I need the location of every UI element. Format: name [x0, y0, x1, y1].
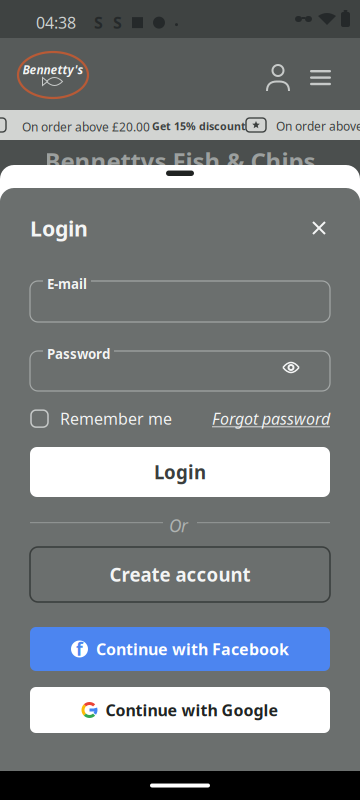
staticText: Forgot password [212, 408, 330, 429]
staticText: S [113, 12, 122, 33]
staticText: Create account [109, 562, 250, 587]
button[interactable]: Login [30, 447, 330, 497]
button[interactable]: Account [267, 65, 289, 91]
button[interactable]: Forgot password [212, 408, 330, 429]
button[interactable]: Remember me [31, 408, 172, 429]
staticText: Remember me [60, 408, 172, 429]
staticText: Continue with Facebook [96, 638, 289, 660]
staticText: S [94, 12, 103, 33]
staticText: Bennetty's [22, 61, 83, 77]
button[interactable]: Continue with Google [30, 687, 330, 733]
button[interactable]: Create account [30, 547, 330, 602]
staticText: On order above £20.00 [22, 119, 150, 135]
staticText: Continue with Google [105, 699, 278, 721]
staticText: Login [154, 460, 206, 484]
staticText: 04:38 [36, 12, 76, 33]
button[interactable]: f [30, 627, 330, 671]
staticText: Login [30, 214, 88, 242]
staticText: Or [169, 514, 188, 537]
staticText: E-mail [47, 275, 87, 293]
staticText: Bennettys Fish & Chips [44, 145, 315, 177]
staticText: f [76, 637, 83, 660]
staticText: Password [47, 345, 110, 363]
button[interactable]: Menu [310, 70, 331, 85]
button[interactable]: Close [313, 222, 325, 234]
staticText: Get 15% discount [152, 119, 246, 133]
staticText: On order above £20 [276, 118, 360, 134]
